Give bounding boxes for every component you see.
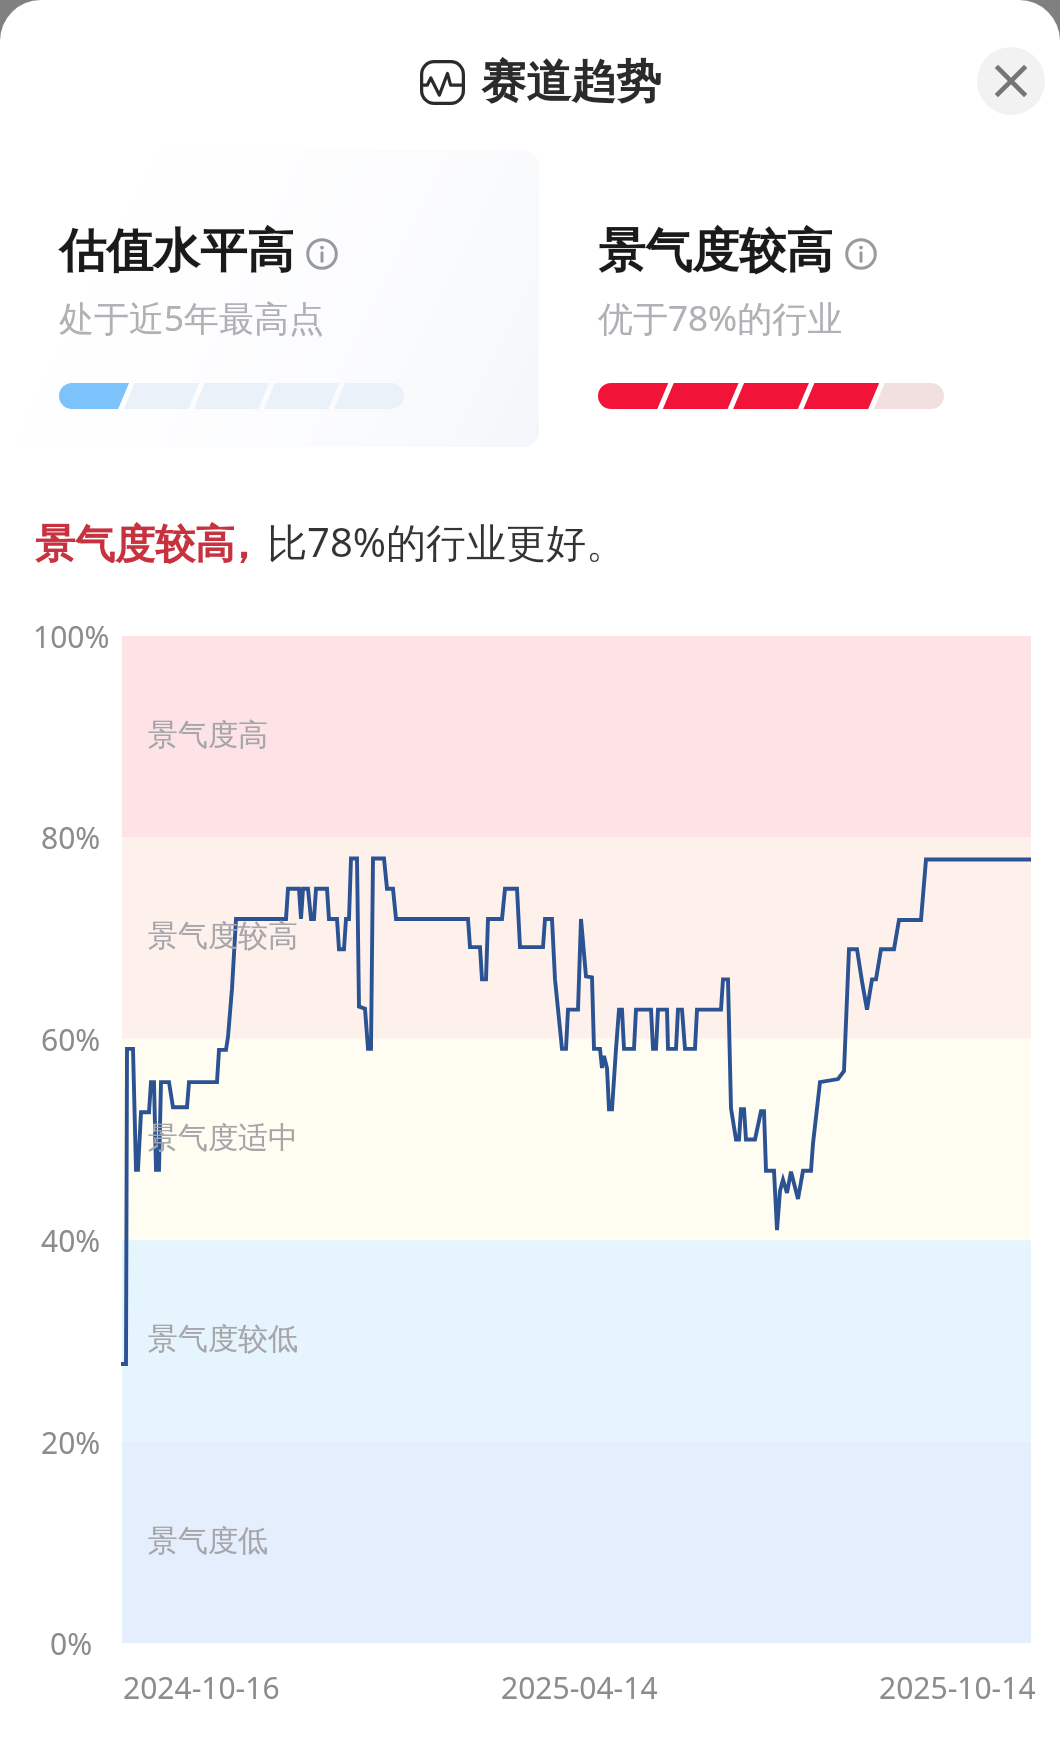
staticText: 景气度低	[148, 1522, 268, 1560]
button[interactable]	[39, 200, 424, 430]
staticText: 景气度较高	[148, 917, 298, 955]
staticText: 80%	[41, 817, 101, 858]
button[interactable]: Info about 估值水平高	[306, 238, 338, 270]
staticText: 100%	[33, 616, 110, 657]
staticText: 景气度适中	[148, 1119, 298, 1157]
button[interactable]	[578, 200, 964, 430]
staticText: 赛道趋势	[481, 54, 661, 111]
staticText: 0%	[50, 1623, 93, 1664]
staticText: 2024-10-16	[123, 1667, 280, 1708]
staticText: 景气度较高	[598, 222, 833, 281]
staticText: 景气度高	[148, 716, 268, 754]
staticText: 估值水平高	[59, 222, 294, 281]
staticText: 2025-10-14	[879, 1667, 1036, 1708]
staticText: 景气度较低	[148, 1320, 298, 1358]
staticText: 60%	[41, 1019, 101, 1060]
button[interactable]: Info about 景气度较高	[845, 238, 877, 270]
staticText: 优于78%的行业	[598, 294, 843, 342]
staticText: 处于近5年最高点	[59, 294, 325, 342]
staticText: ，	[223, 519, 263, 569]
staticText: 40%	[41, 1220, 101, 1261]
staticText: 20%	[41, 1422, 101, 1463]
staticText: 景气度较高	[35, 519, 235, 569]
button[interactable]: Close	[977, 47, 1045, 115]
staticText: 比78%的行业更好。	[267, 514, 626, 569]
staticText: 2025-04-14	[501, 1667, 658, 1708]
